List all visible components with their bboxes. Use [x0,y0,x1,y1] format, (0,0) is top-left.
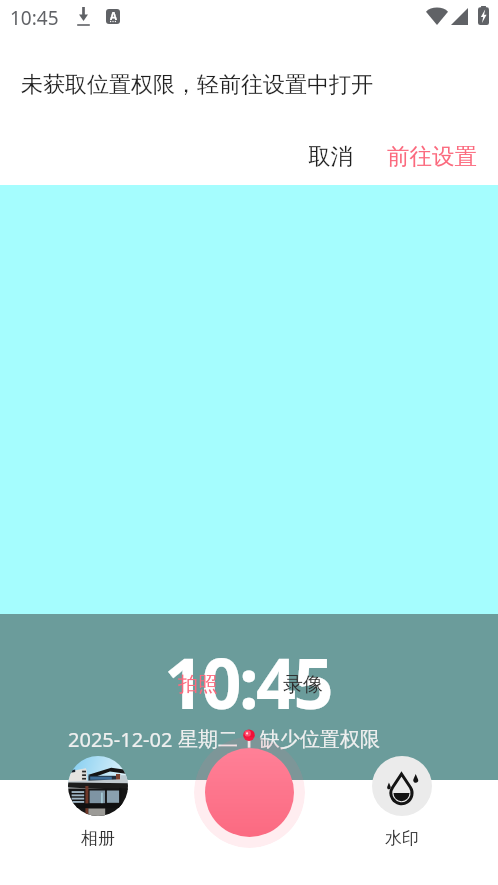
staticText: 缺少位置权限 [260,727,380,752]
button[interactable]: 前往设置 [374,136,490,176]
staticText: 相册 [81,828,115,849]
staticText: 录像 [283,672,323,697]
button[interactable]: 录像 [273,666,333,703]
staticText: A [110,9,117,23]
button[interactable]: 拍照 [194,737,305,848]
staticText: 2025-12-02 [68,726,173,753]
button[interactable]: 取消 [294,136,367,176]
staticText: 星期二 [178,727,238,752]
staticText: 取消 [308,142,353,170]
button[interactable]: 水印 [359,756,444,849]
staticText: 水印 [385,828,419,849]
staticText: 10:45 [164,634,331,729]
button[interactable]: 拍照 [168,666,228,703]
staticText: 拍照 [178,672,218,697]
button[interactable]: 相册 [55,756,140,849]
staticText: 未获取位置权限，轻前往设置中打开 [21,71,373,99]
staticText: 10:45 [10,5,59,31]
staticText: 前往设置 [387,142,477,170]
